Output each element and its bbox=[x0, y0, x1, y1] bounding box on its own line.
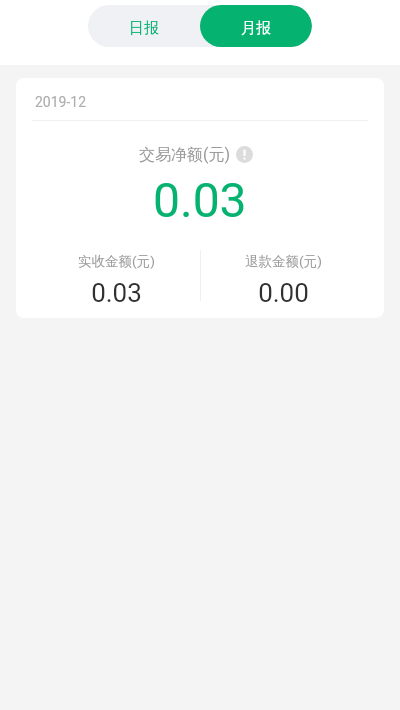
button[interactable]: 日报 bbox=[88, 5, 200, 47]
staticText: 退款金额(元) bbox=[245, 253, 322, 270]
button[interactable]: 月报 bbox=[200, 5, 312, 47]
staticText: 月报 bbox=[241, 19, 271, 38]
staticText: 0.03 bbox=[153, 172, 247, 228]
staticText: 实收金额(元) bbox=[78, 253, 155, 270]
button[interactable]: About net transaction amount bbox=[236, 146, 253, 163]
staticText: 交易净额(元) bbox=[139, 145, 231, 165]
staticText: 0.00 bbox=[258, 278, 309, 308]
staticText: 2019-12 bbox=[35, 94, 87, 110]
staticText: 日报 bbox=[129, 19, 159, 38]
staticText: 0.03 bbox=[91, 278, 142, 308]
